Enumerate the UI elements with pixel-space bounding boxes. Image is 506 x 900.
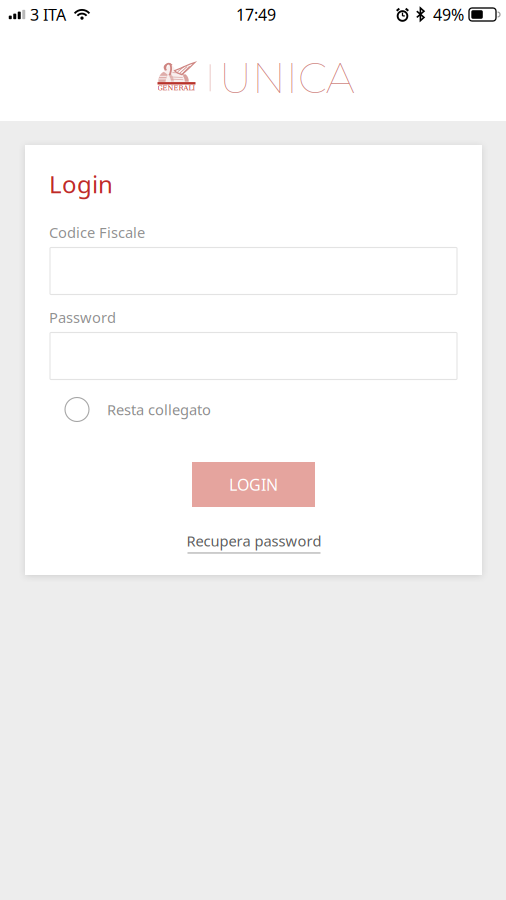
staticText: Codice Fiscale xyxy=(49,222,145,242)
staticText: 17:49 xyxy=(236,4,276,25)
button[interactable] xyxy=(50,332,457,379)
button[interactable]: LOGIN xyxy=(192,462,315,507)
staticText: UNICA xyxy=(219,53,354,103)
staticText: Recupera password xyxy=(186,531,321,550)
staticText: 49% xyxy=(433,4,464,25)
button[interactable]: Recupera password xyxy=(186,531,321,553)
staticText: GENERALI xyxy=(157,84,195,92)
staticText: Resta collegato xyxy=(107,400,211,419)
staticText: 3 ITA xyxy=(30,4,66,25)
staticText: Login xyxy=(49,168,113,200)
button[interactable]: Resta collegato xyxy=(65,394,325,424)
staticText: Password xyxy=(49,307,116,327)
staticText: LOGIN xyxy=(229,474,278,495)
